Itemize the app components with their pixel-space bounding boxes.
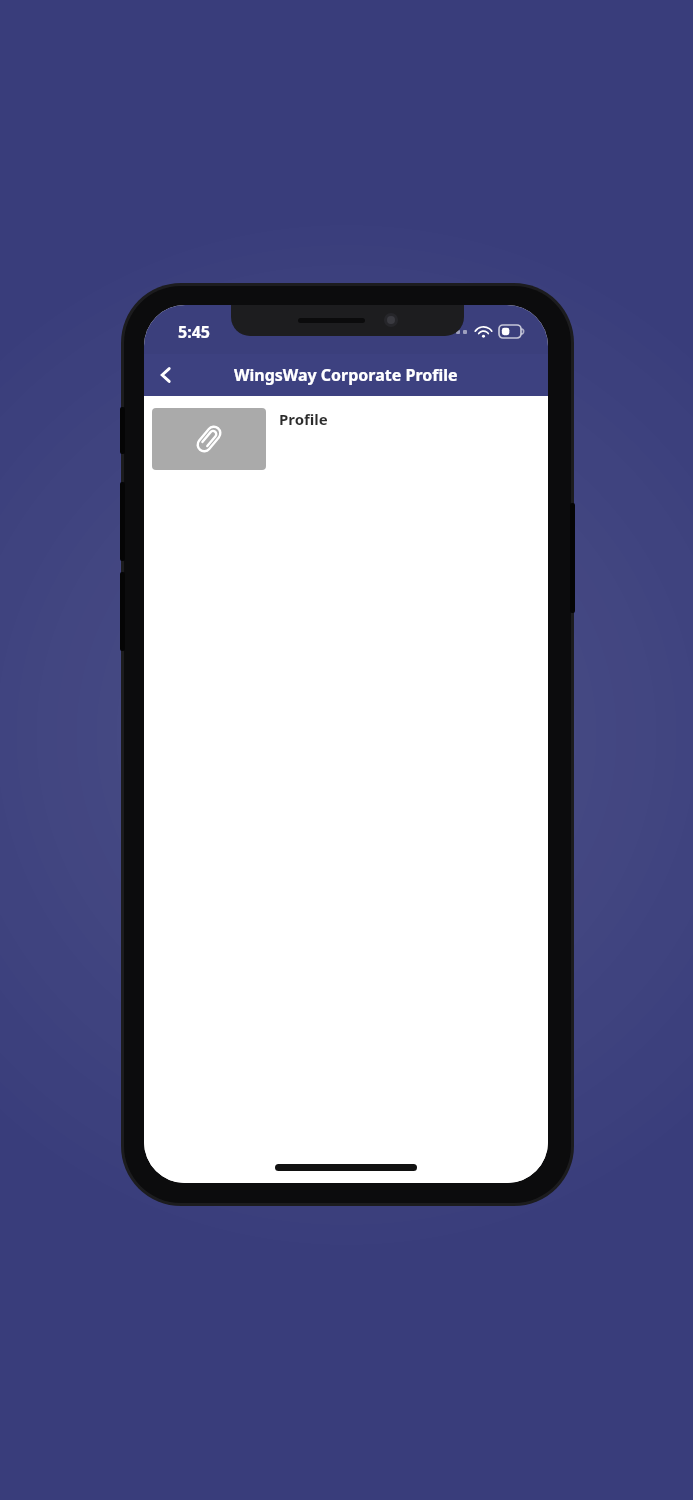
staticText: Profile [279,409,328,429]
button[interactable]: Back [144,354,188,396]
button[interactable]: Profile [144,396,548,482]
staticText: 5:45 [178,321,210,343]
staticText: WingsWay Corporate Profile [234,364,458,386]
